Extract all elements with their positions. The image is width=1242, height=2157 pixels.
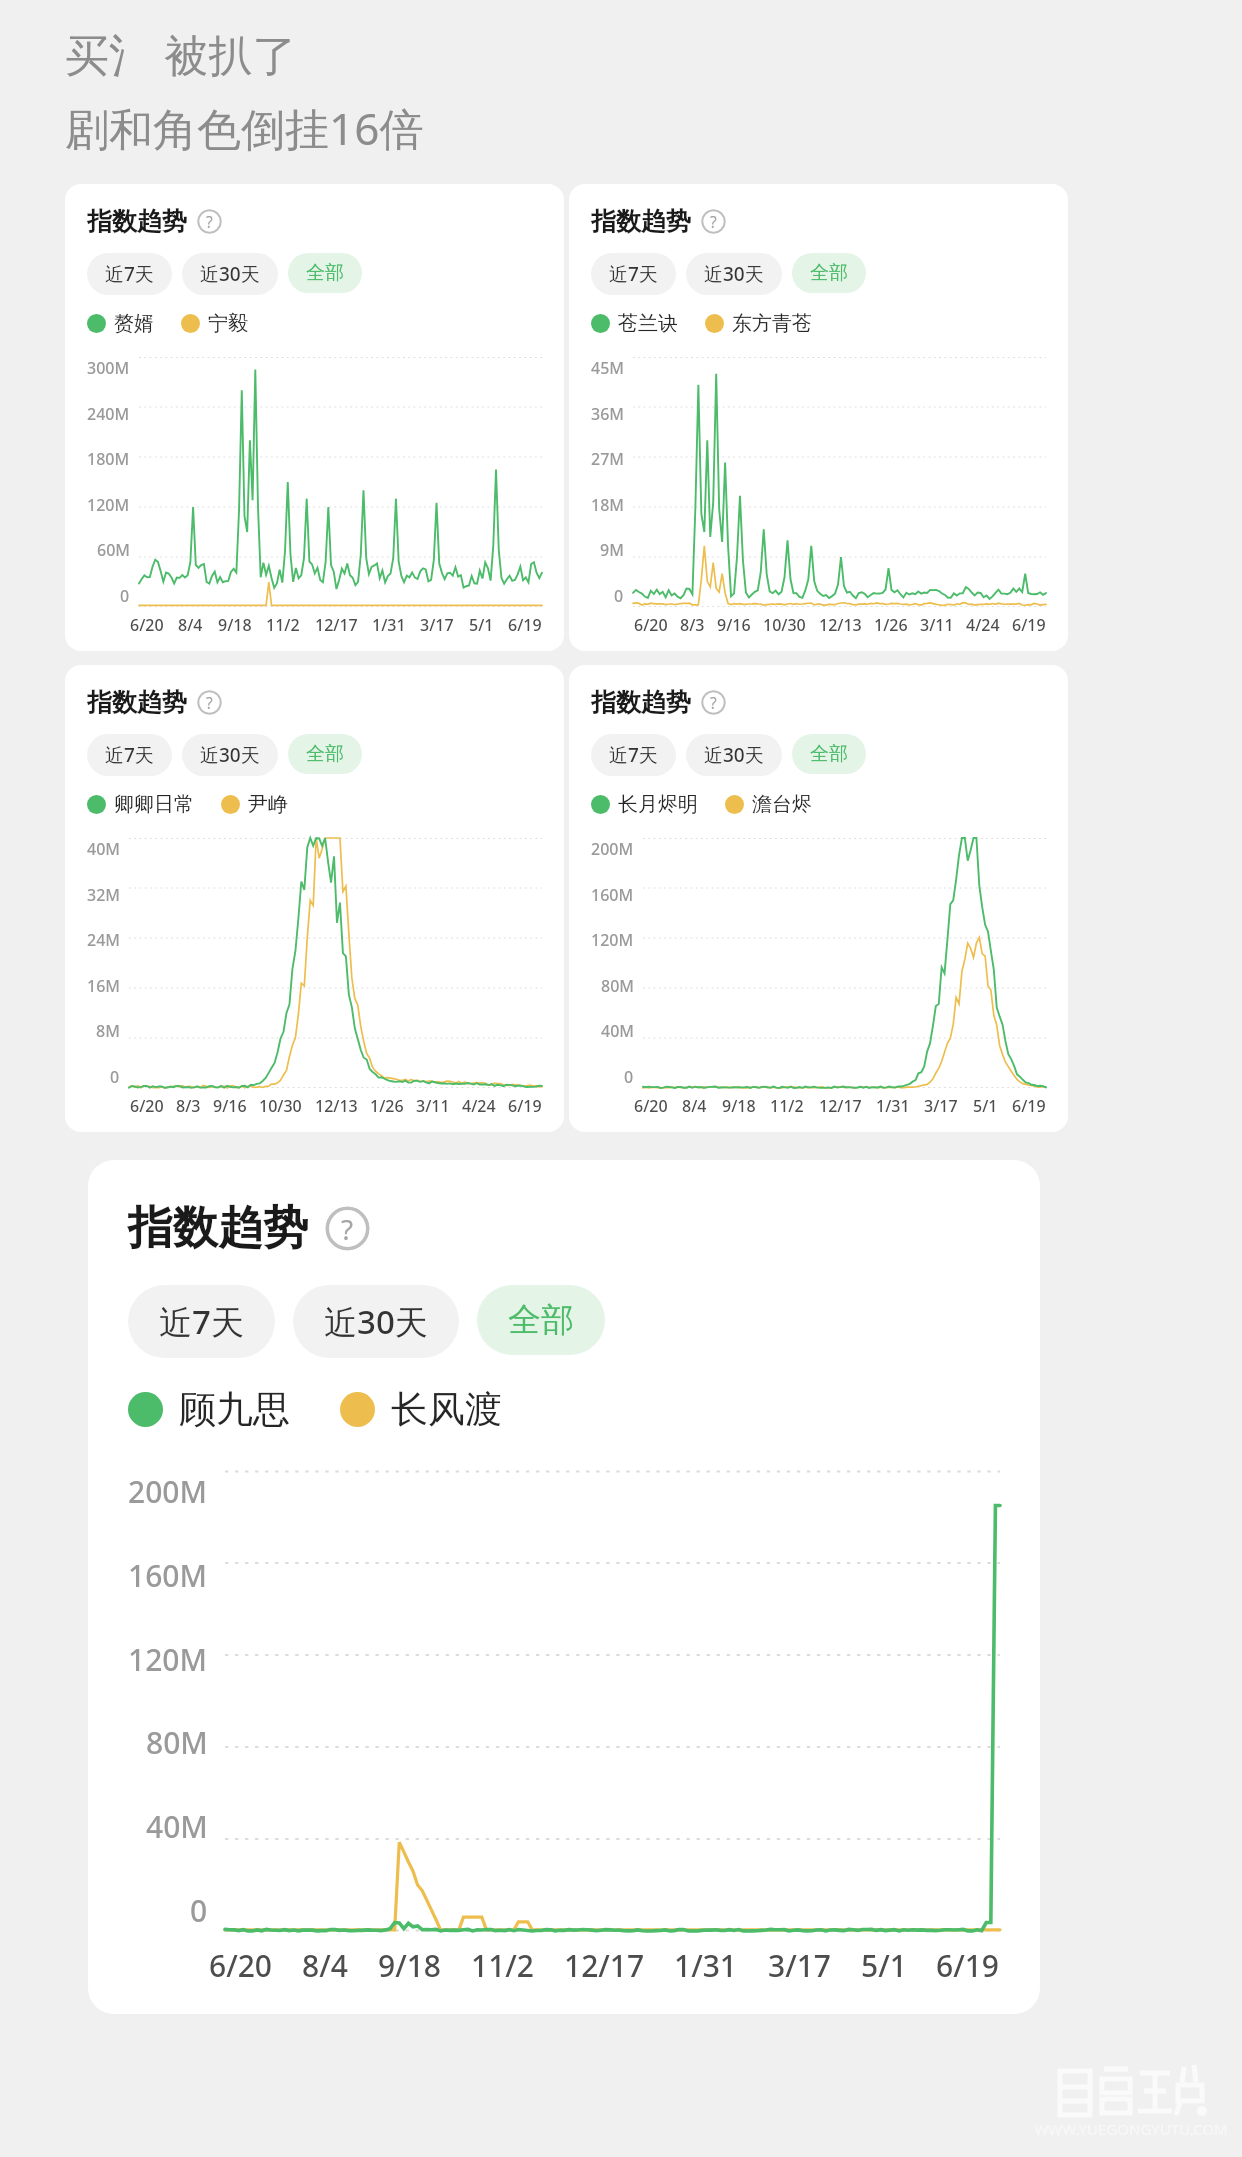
staticText: 赘婿 [114, 311, 154, 336]
staticText: 40M [601, 1020, 634, 1042]
button[interactable]: 指数趋势 [65, 665, 564, 1132]
staticText: 8/4 [178, 614, 203, 636]
staticText: 3/17 [420, 614, 454, 636]
staticText: ? [206, 211, 213, 232]
staticText: 240M [87, 403, 130, 425]
staticText: 5/1 [469, 614, 494, 636]
staticText: 全部 [306, 261, 344, 285]
staticText: 近7天 [105, 261, 154, 287]
staticText: 12/17 [315, 614, 358, 636]
staticText: 8/4 [302, 1945, 348, 1986]
button[interactable]: 近30天 [686, 734, 782, 776]
staticText: 200M [128, 1471, 208, 1512]
button[interactable]: 近30天 [182, 253, 278, 295]
staticText: 5/1 [861, 1945, 907, 1986]
staticText: 5/1 [973, 1095, 998, 1117]
staticText: 澹台烬 [752, 792, 812, 817]
staticText: 6/20 [130, 614, 164, 636]
staticText: 6/19 [508, 614, 542, 636]
button[interactable]: 近7天 [591, 253, 676, 295]
staticText: 9/16 [213, 1095, 247, 1117]
staticText: 24M [87, 929, 120, 951]
button[interactable]: 近30天 [686, 253, 782, 295]
staticText: 3/17 [924, 1095, 958, 1117]
staticText: 近7天 [609, 261, 658, 287]
staticText: 6/19 [1012, 614, 1046, 636]
button[interactable]: 全部 [792, 734, 866, 774]
staticText: 6/19 [936, 1945, 1000, 1986]
button[interactable]: 帮助 [197, 690, 222, 715]
staticText: 36M [591, 403, 624, 425]
staticText: 近30天 [324, 1299, 428, 1344]
button[interactable]: 近7天 [87, 734, 172, 776]
staticText: 80M [146, 1722, 208, 1763]
staticText: 全部 [810, 742, 848, 766]
staticText: 300M [87, 357, 130, 379]
staticText: 4/24 [462, 1095, 496, 1117]
staticText: 近7天 [105, 742, 154, 768]
staticText: 40M [87, 838, 120, 860]
staticText: 120M [128, 1639, 208, 1680]
staticText: 指数趋势 [87, 687, 187, 718]
staticText: 近7天 [609, 742, 658, 768]
staticText: 8/4 [682, 1095, 707, 1117]
staticText: 尹峥 [248, 792, 288, 817]
staticText: 160M [128, 1555, 208, 1596]
button[interactable]: 帮助 [701, 209, 726, 234]
button[interactable]: 指数趋势 [569, 665, 1068, 1132]
button[interactable]: 近7天 [591, 734, 676, 776]
staticText: 40M [146, 1806, 208, 1847]
button[interactable]: 全部 [792, 253, 866, 293]
staticText: 9/18 [218, 614, 252, 636]
staticText: 80M [601, 975, 634, 997]
button[interactable]: 近7天 [128, 1285, 275, 1358]
button[interactable]: 指数趋势 [88, 1160, 1040, 2014]
staticText: 60M [97, 539, 130, 561]
button[interactable]: 全部 [288, 253, 362, 293]
staticText: 1/31 [674, 1945, 738, 1986]
staticText: 11/2 [266, 614, 300, 636]
staticText: 120M [87, 494, 130, 516]
staticText: 9/16 [717, 614, 751, 636]
staticText: 近30天 [704, 261, 764, 287]
staticText: 1/31 [876, 1095, 910, 1117]
staticText: 9/18 [378, 1945, 442, 1986]
staticText: 0 [120, 585, 130, 607]
button[interactable]: 近7天 [87, 253, 172, 295]
staticText: 8/3 [176, 1095, 201, 1117]
staticText: 6/20 [634, 614, 668, 636]
staticText: 指数趋势 [87, 206, 187, 237]
staticText: 3/11 [416, 1095, 450, 1117]
button[interactable]: 全部 [288, 734, 362, 774]
staticText: 顾九思 [179, 1386, 290, 1433]
staticText: 全部 [810, 261, 848, 285]
staticText: 12/17 [564, 1945, 645, 1986]
button[interactable]: 近30天 [293, 1285, 459, 1358]
staticText: 全部 [306, 742, 344, 766]
button[interactable]: 指数趋势 [65, 184, 564, 651]
button[interactable]: 帮助 [325, 1206, 370, 1251]
staticText: 6/20 [634, 1095, 668, 1117]
staticText: 12/13 [819, 614, 862, 636]
button[interactable]: 指数趋势 [569, 184, 1068, 651]
staticText: 0 [624, 1066, 634, 1088]
staticText: 10/30 [259, 1095, 302, 1117]
staticText: 8/3 [680, 614, 705, 636]
staticText: 1/26 [874, 614, 908, 636]
staticText: 0 [190, 1890, 208, 1931]
staticText: 苍兰诀 [618, 311, 678, 336]
staticText: 0 [614, 585, 624, 607]
button[interactable]: 帮助 [197, 209, 222, 234]
staticText: 12/17 [819, 1095, 862, 1117]
button[interactable]: 近30天 [182, 734, 278, 776]
button[interactable]: 帮助 [701, 690, 726, 715]
staticText: 32M [87, 884, 120, 906]
staticText: 长风渡 [391, 1386, 502, 1433]
staticText: 指数趋势 [591, 687, 691, 718]
button[interactable]: 全部 [477, 1285, 605, 1355]
staticText: 1/26 [370, 1095, 404, 1117]
staticText: 近7天 [159, 1299, 244, 1344]
staticText: 12/13 [315, 1095, 358, 1117]
staticText: 4/24 [966, 614, 1000, 636]
